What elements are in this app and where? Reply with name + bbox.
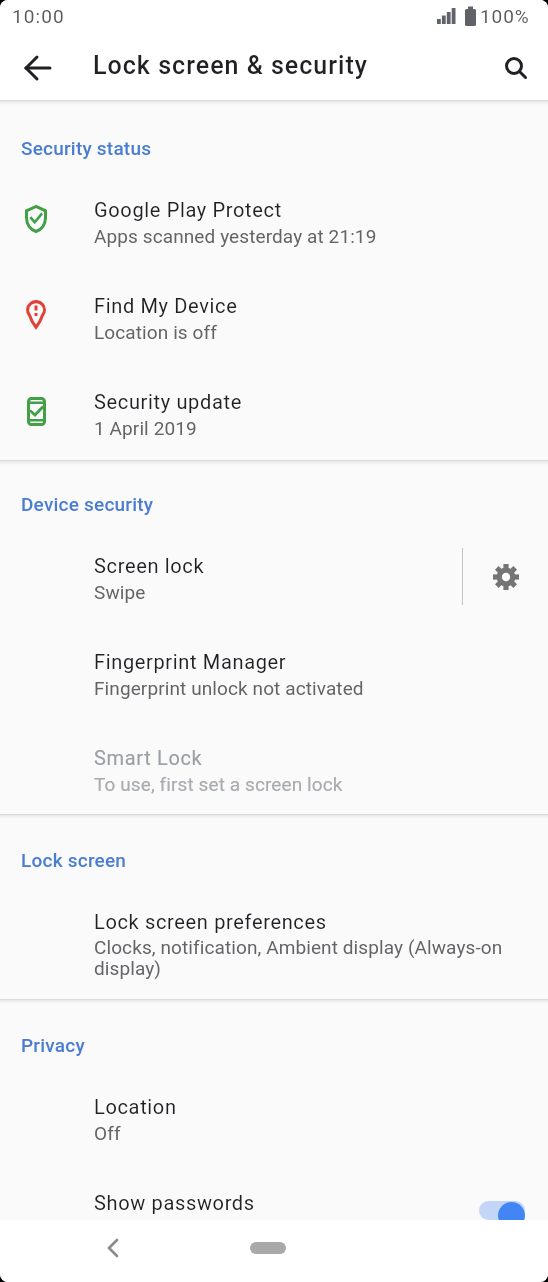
staticText: Screen lock xyxy=(94,554,205,577)
staticText: Location xyxy=(94,1095,177,1118)
staticText: Show passwords xyxy=(94,1191,255,1214)
staticText: Google Play Protect xyxy=(94,198,282,221)
staticText: Clocks, notification, Ambient display (A… xyxy=(94,936,524,980)
button[interactable] xyxy=(0,884,548,999)
button[interactable] xyxy=(492,44,540,92)
staticText: Privacy xyxy=(21,1034,85,1056)
button[interactable] xyxy=(0,1165,548,1220)
button[interactable] xyxy=(0,172,548,268)
staticText: To use, first set a screen lock xyxy=(94,773,343,795)
button[interactable] xyxy=(0,1069,548,1165)
staticText: Location is off xyxy=(94,321,217,343)
staticText: Fingerprint unlock not activated xyxy=(94,677,364,699)
button[interactable] xyxy=(14,44,62,92)
staticText: Security status xyxy=(21,137,152,159)
staticText: Fingerprint Manager xyxy=(94,650,287,673)
staticText: Security update xyxy=(94,390,242,413)
button[interactable] xyxy=(0,528,460,624)
staticText: Off xyxy=(94,1122,121,1144)
staticText: 1 April 2019 xyxy=(94,417,197,439)
button[interactable] xyxy=(0,624,548,720)
button[interactable] xyxy=(0,720,548,814)
staticText: Device security xyxy=(21,493,154,515)
staticText: 100% xyxy=(480,5,530,27)
button[interactable] xyxy=(89,1224,137,1272)
staticText: Lock screen & security xyxy=(93,51,368,80)
button[interactable] xyxy=(0,364,548,460)
button[interactable] xyxy=(244,1236,292,1260)
staticText: Lock screen preferences xyxy=(94,910,327,933)
button[interactable] xyxy=(482,553,530,601)
staticText: 10:00 xyxy=(12,5,65,27)
button[interactable] xyxy=(0,268,548,364)
staticText: Smart Lock xyxy=(94,746,203,769)
staticText: Lock screen xyxy=(21,849,127,871)
staticText: Swipe xyxy=(94,581,146,603)
staticText: Apps scanned yesterday at 21:19 xyxy=(94,225,377,247)
staticText: Find My Device xyxy=(94,294,238,317)
